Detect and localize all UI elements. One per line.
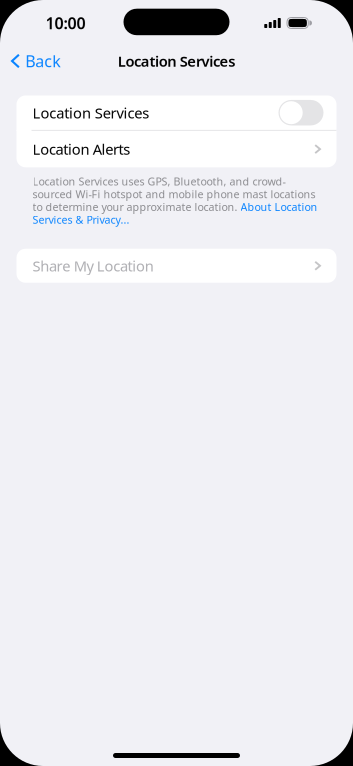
button[interactable]: Back <box>0 45 69 77</box>
staticText: Location Alerts <box>32 139 130 159</box>
staticText: Location Services <box>118 51 235 71</box>
staticText: Back <box>25 50 61 72</box>
button[interactable]: Location Services <box>16 95 336 130</box>
button[interactable]: Location Alerts <box>16 131 336 167</box>
staticText: Share My Location <box>32 256 154 275</box>
button[interactable]: Share My Location <box>16 249 336 283</box>
staticText: 10:00 <box>45 12 85 34</box>
staticText: Location Services <box>32 103 149 122</box>
staticText: Location Services uses GPS, Bluetooth, a… <box>32 174 317 227</box>
